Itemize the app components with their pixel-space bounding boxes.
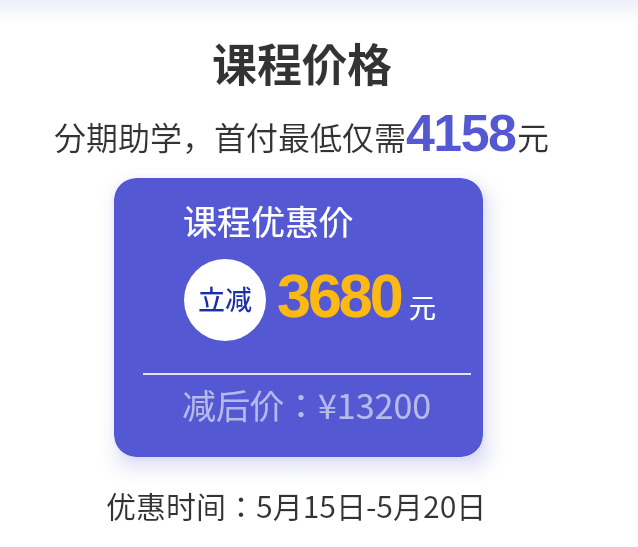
staticText: 元 — [409, 287, 436, 326]
staticText: 分期助学，首付最低仅需 — [54, 113, 407, 159]
staticText: 减后价：¥13200 — [182, 380, 432, 429]
staticText: 4158 — [406, 104, 516, 162]
button[interactable]: 课程优惠价 — [114, 178, 483, 457]
staticText: 课程价格 — [212, 30, 393, 95]
staticText: 立减 — [198, 279, 252, 318]
staticText: 3680 — [277, 262, 401, 330]
staticText: 优惠时间：5月15日-5月20日 — [106, 483, 487, 526]
staticText: 元 — [517, 113, 550, 159]
staticText: 课程优惠价 — [183, 196, 353, 245]
